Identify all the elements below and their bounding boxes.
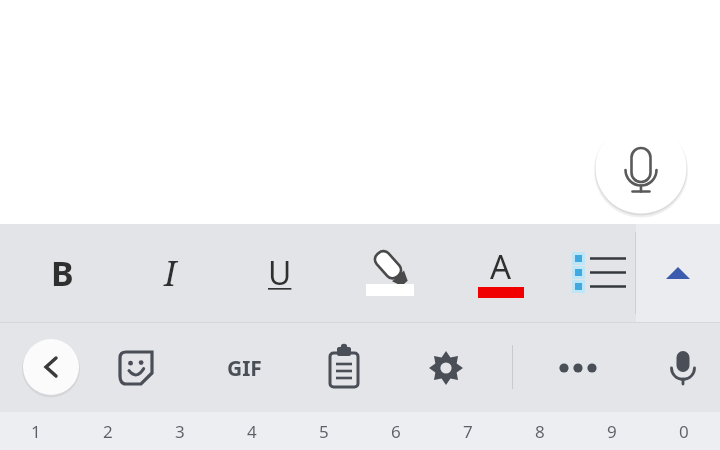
button[interactable]: 0 (648, 412, 720, 450)
staticText: 3 (175, 420, 185, 443)
button[interactable]: Settings (423, 345, 469, 391)
button[interactable]: Voice input (594, 121, 688, 215)
staticText: 9 (607, 420, 617, 443)
button[interactable]: 3 (144, 412, 216, 450)
staticText: GIF (227, 354, 262, 383)
button[interactable]: 1 (0, 412, 72, 450)
staticText: U (268, 251, 292, 295)
button[interactable]: Bulleted list (570, 248, 636, 298)
button[interactable]: Bold (28, 242, 96, 304)
staticText: 7 (463, 420, 473, 443)
button[interactable]: Voice typing (660, 345, 706, 391)
staticText: 8 (535, 420, 545, 443)
staticText: 1 (31, 420, 41, 443)
button[interactable]: Stickers (113, 345, 159, 391)
staticText: A (490, 244, 512, 289)
staticText: 4 (247, 420, 257, 443)
staticText: 5 (319, 420, 329, 443)
staticText: B (51, 250, 74, 296)
button[interactable]: 9 (576, 412, 648, 450)
staticText: I (164, 250, 177, 296)
button[interactable]: More options (548, 345, 608, 391)
button[interactable]: 2 (72, 412, 144, 450)
button[interactable]: Back (22, 338, 80, 396)
button[interactable]: 6 (360, 412, 432, 450)
button[interactable]: 7 (432, 412, 504, 450)
button[interactable]: 5 (288, 412, 360, 450)
button[interactable]: GIF (212, 345, 276, 391)
staticText: 0 (679, 420, 689, 443)
button[interactable]: Text colour (463, 242, 539, 304)
button[interactable]: Underline (246, 242, 314, 304)
button[interactable]: 8 (504, 412, 576, 450)
button[interactable]: 4 (216, 412, 288, 450)
button[interactable]: Clipboard (321, 345, 367, 391)
staticText: 6 (391, 420, 401, 443)
button[interactable]: Collapse toolbar (646, 248, 710, 298)
button[interactable]: Italic (136, 242, 204, 304)
button[interactable]: Highlight (352, 242, 428, 304)
staticText: 2 (103, 420, 113, 443)
